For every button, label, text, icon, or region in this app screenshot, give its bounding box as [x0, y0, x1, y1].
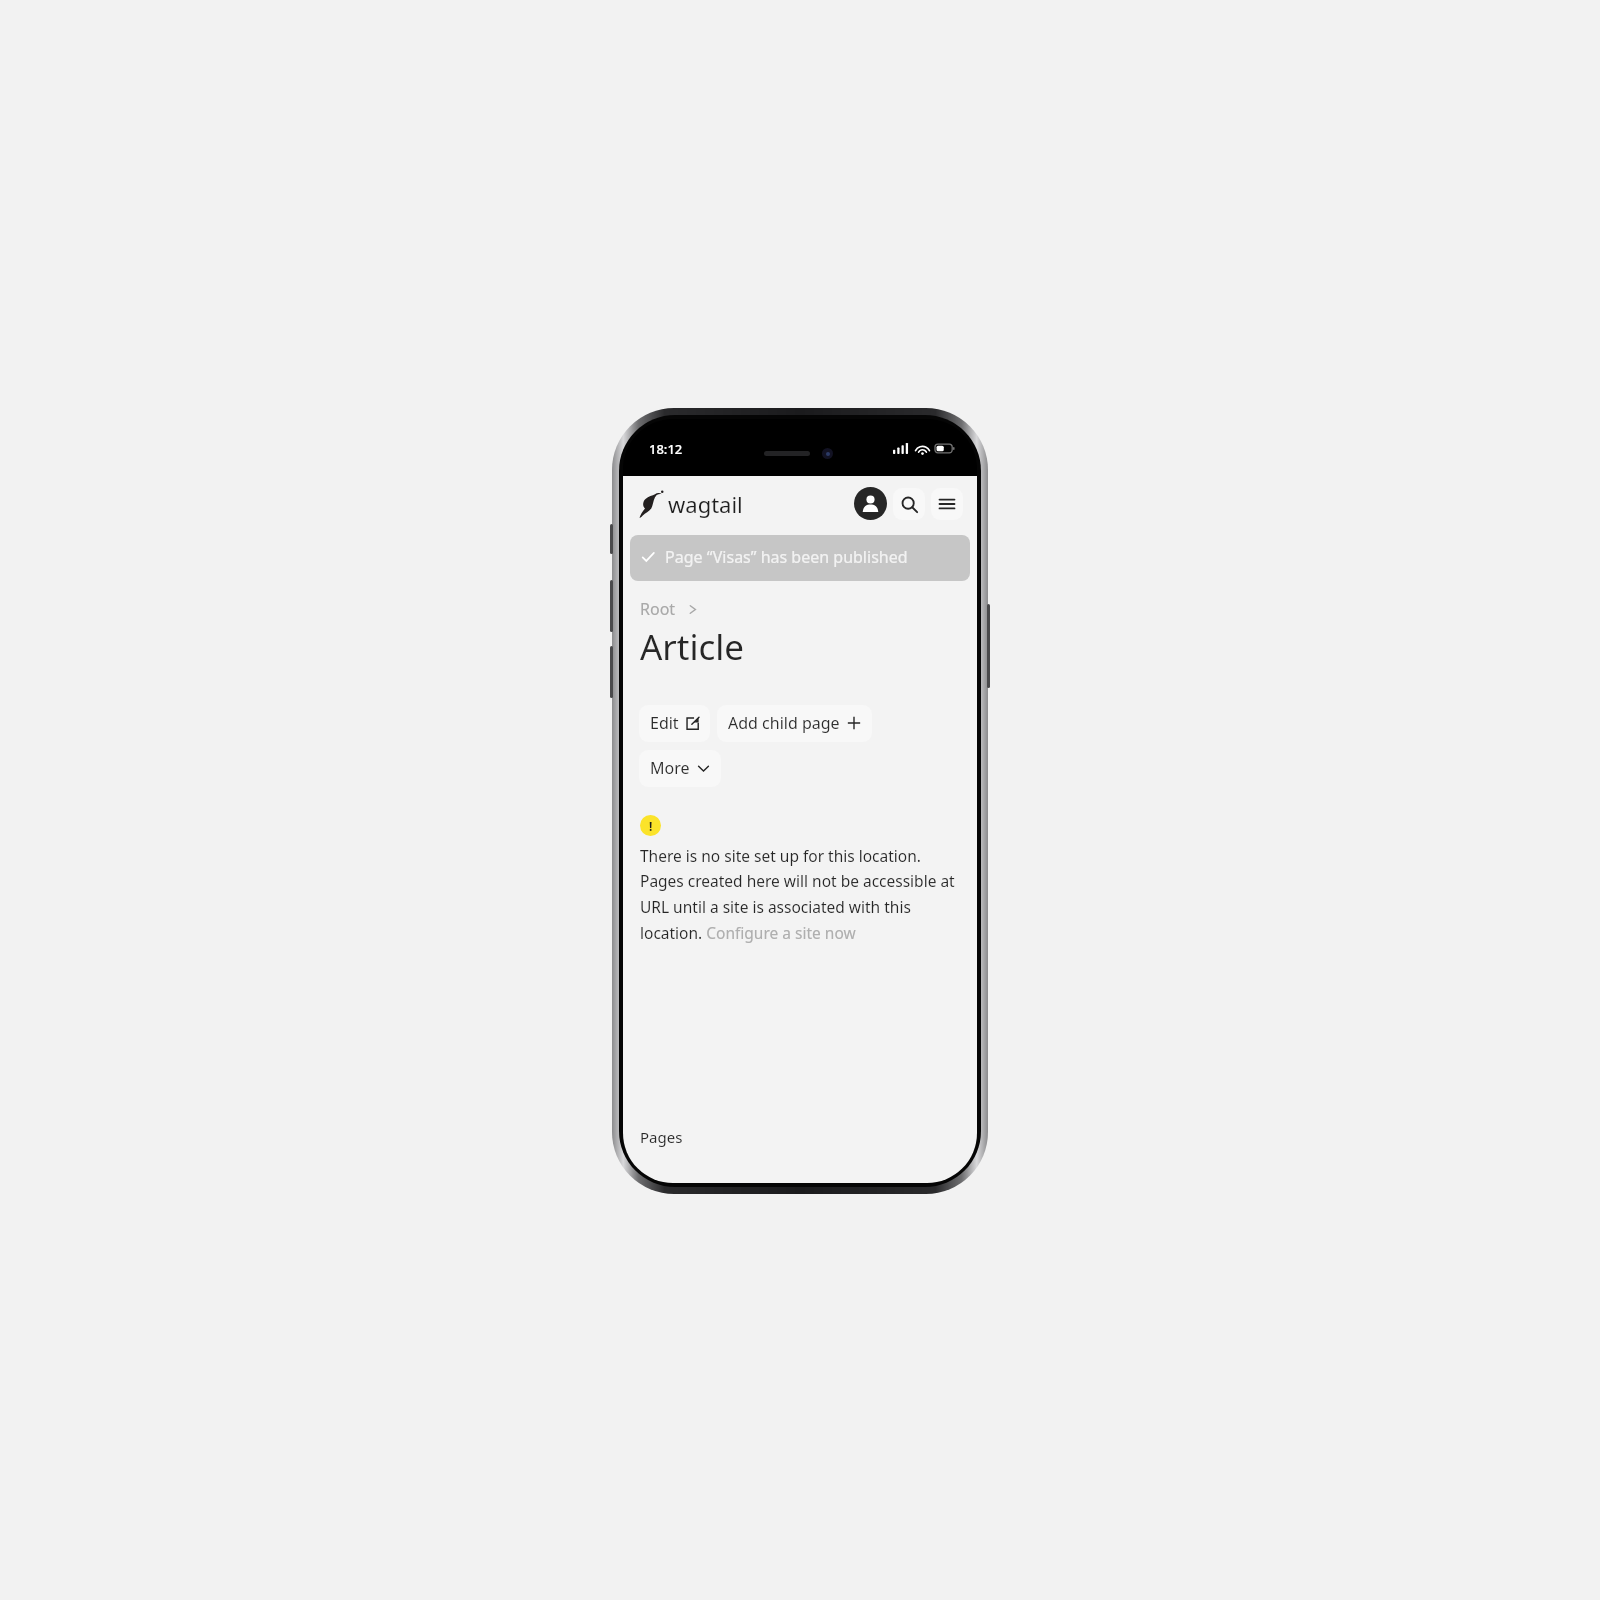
button[interactable]: Search — [893, 488, 925, 520]
button[interactable]: Add child page — [717, 705, 872, 742]
staticText: More — [650, 757, 690, 779]
button[interactable]: Account — [854, 487, 887, 520]
staticText: ! — [649, 818, 653, 834]
staticText: 18:12 — [649, 440, 683, 458]
staticText: wagtail — [668, 489, 743, 519]
staticText: There is no site set up for this locatio… — [640, 845, 963, 944]
staticText: Pages — [640, 1127, 683, 1147]
staticText: Root — [640, 598, 676, 620]
staticText: Edit — [650, 712, 679, 734]
button[interactable]: Root — [640, 598, 698, 620]
staticText: Page “Visas” has been published — [665, 546, 908, 568]
button[interactable]: wagtail — [639, 489, 743, 519]
button[interactable]: Page “Visas” has been published — [630, 535, 970, 581]
staticText: Add child page — [728, 712, 840, 734]
button[interactable]: Menu — [931, 488, 963, 520]
button[interactable]: Edit — [639, 705, 710, 742]
button[interactable]: More — [639, 750, 721, 787]
staticText: Article — [640, 623, 745, 671]
